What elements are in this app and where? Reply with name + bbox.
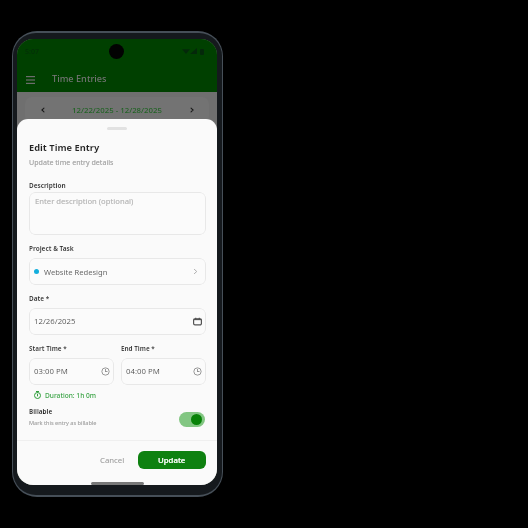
button[interactable]: Website Redesign — [29, 258, 206, 285]
button[interactable]: Next week — [174, 97, 209, 123]
button[interactable]: Previous week — [25, 97, 60, 123]
staticText: Website Redesign — [44, 267, 108, 277]
button[interactable]: 12/26/2025 — [29, 308, 206, 335]
staticText: Update — [158, 455, 186, 466]
button[interactable]: 03:00 PM — [29, 358, 114, 385]
staticText: Cancel — [100, 455, 125, 466]
button[interactable]: Billable — [179, 412, 205, 427]
staticText: Duration: 1h 0m — [45, 391, 96, 400]
staticText: Update time entry details — [29, 157, 114, 167]
staticText: Edit Time Entry — [29, 141, 100, 154]
staticText: Enter description (optional) — [35, 196, 134, 206]
button[interactable]: 04:00 PM — [121, 358, 206, 385]
staticText: 5:07 — [25, 47, 39, 57]
staticText: Description — [29, 181, 66, 190]
staticText: 04:00 PM — [126, 366, 160, 377]
button[interactable]: Cancel — [93, 449, 132, 471]
staticText: 12/26/2025 — [34, 316, 76, 327]
button[interactable]: Update — [138, 451, 206, 469]
staticText: Time Entries — [52, 72, 107, 85]
staticText: Billable — [29, 407, 53, 416]
staticText: End Time * — [121, 344, 155, 353]
staticText: Mark this entry as billable — [29, 419, 97, 427]
button[interactable]: Enter description (optional) — [29, 192, 206, 235]
button[interactable]: Open navigation menu — [22, 71, 39, 88]
staticText: Start Time * — [29, 344, 67, 353]
staticText: Project & Task — [29, 244, 74, 253]
staticText: 12/22/2025 - 12/28/2025 — [72, 105, 162, 116]
staticText: 03:00 PM — [34, 366, 68, 377]
staticText: Date * — [29, 294, 50, 303]
